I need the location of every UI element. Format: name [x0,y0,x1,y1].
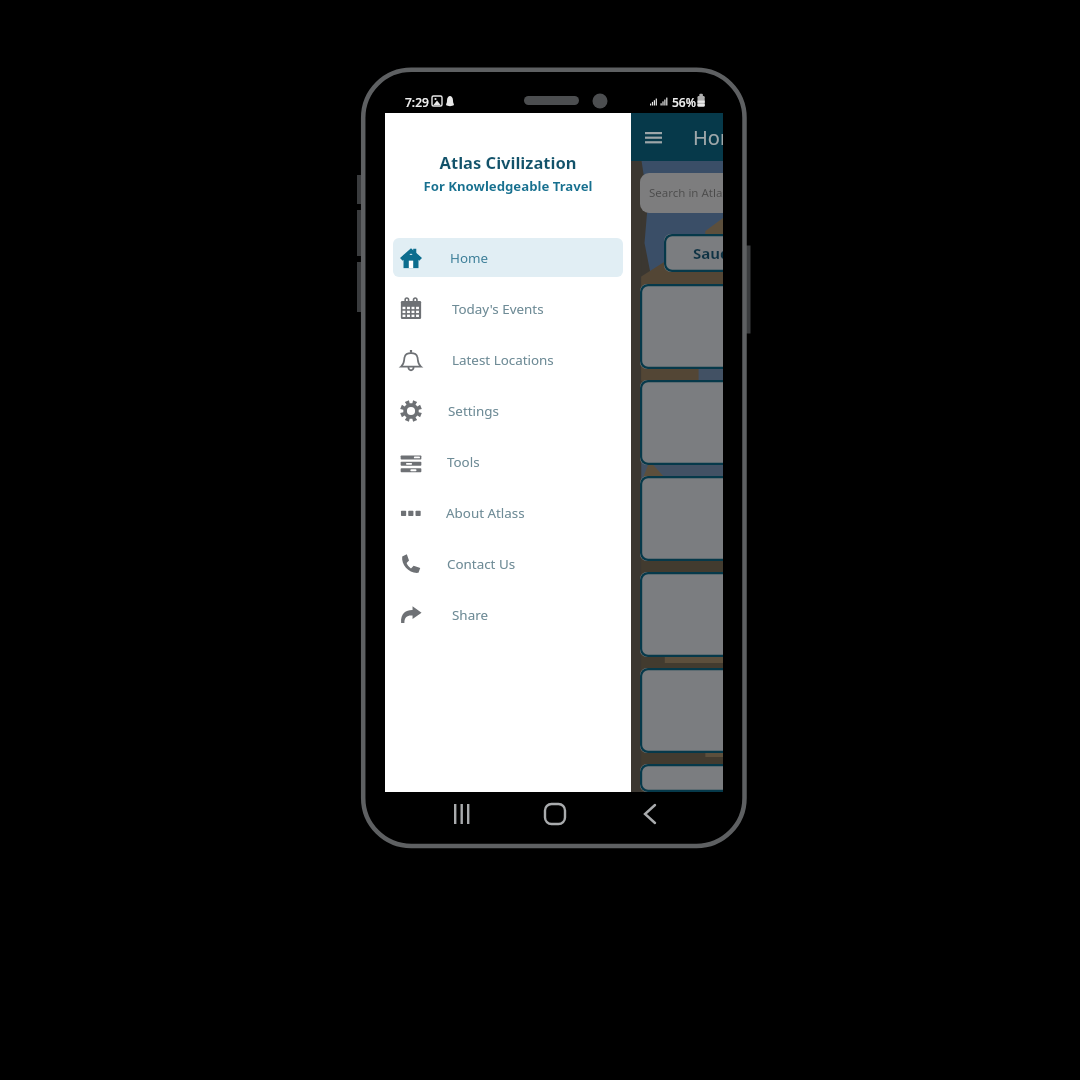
staticText: Search in Atlas [649,185,723,201]
staticText: Saudi Arabia [693,243,723,263]
button[interactable]: Search in Atlas [640,173,723,213]
staticText: Tools [447,453,480,471]
staticText: Today's Events [452,300,544,318]
button[interactable] [640,284,723,369]
button[interactable] [640,476,723,561]
staticText: Home [693,124,723,151]
staticText: Atlas Civilization [385,151,631,173]
staticText: Home [450,249,489,267]
staticText: Settings [448,402,499,420]
staticText: Share [452,606,488,624]
button[interactable] [640,668,723,753]
button[interactable] [640,764,723,792]
button[interactable] [640,572,723,657]
staticText: 7:29 [405,94,429,110]
staticText: Contact Us [447,555,516,573]
button[interactable]: Home [525,795,585,835]
button[interactable]: Share [393,595,623,634]
staticText: About Atlass [446,504,525,522]
button[interactable]: Contact Us [393,544,623,583]
button[interactable]: About Atlass [393,493,623,532]
button[interactable]: Home [393,238,623,277]
button[interactable]: Today's Events [393,289,623,328]
button[interactable]: Settings [393,391,623,430]
button[interactable] [640,380,723,465]
staticText: 56% [672,94,696,110]
staticText: For Knowledgeable Travel [385,177,631,195]
staticText: Latest Locations [452,351,554,369]
button[interactable]: Recents [430,795,490,835]
button[interactable]: Open navigation menu [631,115,675,159]
button[interactable]: Latest Locations [393,340,623,379]
button[interactable]: Tools [393,442,623,481]
button[interactable]: Back [620,795,680,835]
button[interactable]: Saudi Arabia [664,234,723,272]
